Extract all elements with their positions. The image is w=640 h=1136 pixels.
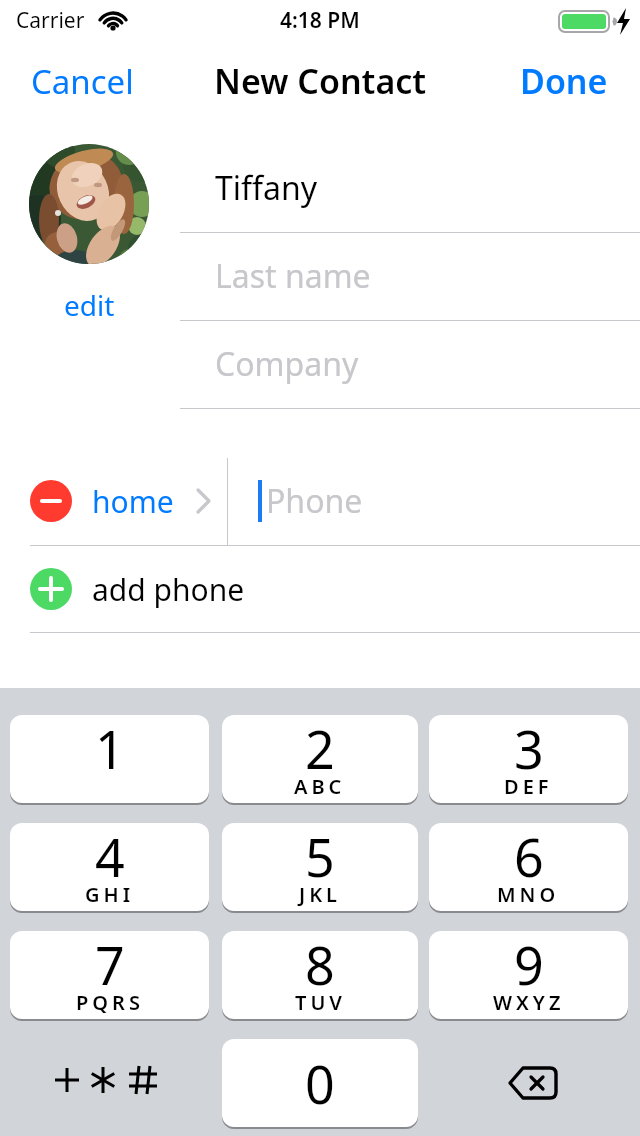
staticText: TUV <box>295 989 346 1016</box>
button[interactable]: home <box>92 481 174 522</box>
staticText: Cancel <box>31 59 134 104</box>
button[interactable]: 7 <box>10 931 209 1019</box>
button[interactable] <box>29 144 149 264</box>
button[interactable]: Last name <box>180 232 640 320</box>
button[interactable]: 6 <box>429 823 628 911</box>
staticText: GHI <box>85 881 135 908</box>
staticText: ABC <box>294 773 346 800</box>
staticText: 5 <box>305 823 335 892</box>
button[interactable]: 9 <box>429 931 628 1019</box>
staticText: WXYZ <box>493 989 565 1016</box>
button[interactable]: 3 <box>429 715 628 803</box>
button[interactable] <box>429 1039 628 1127</box>
button[interactable]: 1 <box>10 715 209 803</box>
staticText: DEF <box>504 773 553 800</box>
button[interactable]: 0 <box>222 1039 418 1127</box>
staticText: 4:18 PM <box>280 6 360 35</box>
staticText: Done <box>520 58 608 104</box>
staticText: 3 <box>514 715 544 784</box>
button[interactable]: 8 <box>222 931 418 1019</box>
staticText: Carrier <box>16 6 85 35</box>
button[interactable]: Company <box>180 320 640 408</box>
staticText: 8 <box>305 931 335 1000</box>
button[interactable]: Cancel <box>24 59 127 104</box>
staticText: 6 <box>514 823 544 892</box>
staticText: MNO <box>497 881 560 908</box>
button[interactable] <box>10 1039 209 1127</box>
button[interactable]: 5 <box>222 823 418 911</box>
button[interactable]: 2 <box>222 715 418 803</box>
staticText: edit <box>64 286 115 320</box>
staticText: PQRS <box>76 989 144 1016</box>
staticText: JKL <box>299 881 342 908</box>
button[interactable]: edit <box>29 286 149 320</box>
staticText: New Contact <box>214 58 427 104</box>
button[interactable]: add phone <box>0 546 640 632</box>
staticText: Last name <box>215 254 371 298</box>
staticText: Tiffany <box>215 166 318 210</box>
staticText: 7 <box>95 931 125 1000</box>
staticText: Company <box>215 342 359 386</box>
button[interactable]: Tiffany <box>180 144 640 232</box>
staticText: 4 <box>95 823 125 892</box>
staticText: add phone <box>92 569 245 610</box>
button[interactable] <box>30 480 72 522</box>
staticText: 0 <box>305 1048 335 1119</box>
staticText: home <box>92 481 174 522</box>
staticText: Phone <box>266 479 363 523</box>
staticText: 9 <box>514 931 544 1000</box>
button[interactable]: 4 <box>10 823 209 911</box>
staticText: 1 <box>95 715 125 784</box>
staticText: 2 <box>305 715 335 784</box>
button[interactable]: Done <box>528 58 616 104</box>
